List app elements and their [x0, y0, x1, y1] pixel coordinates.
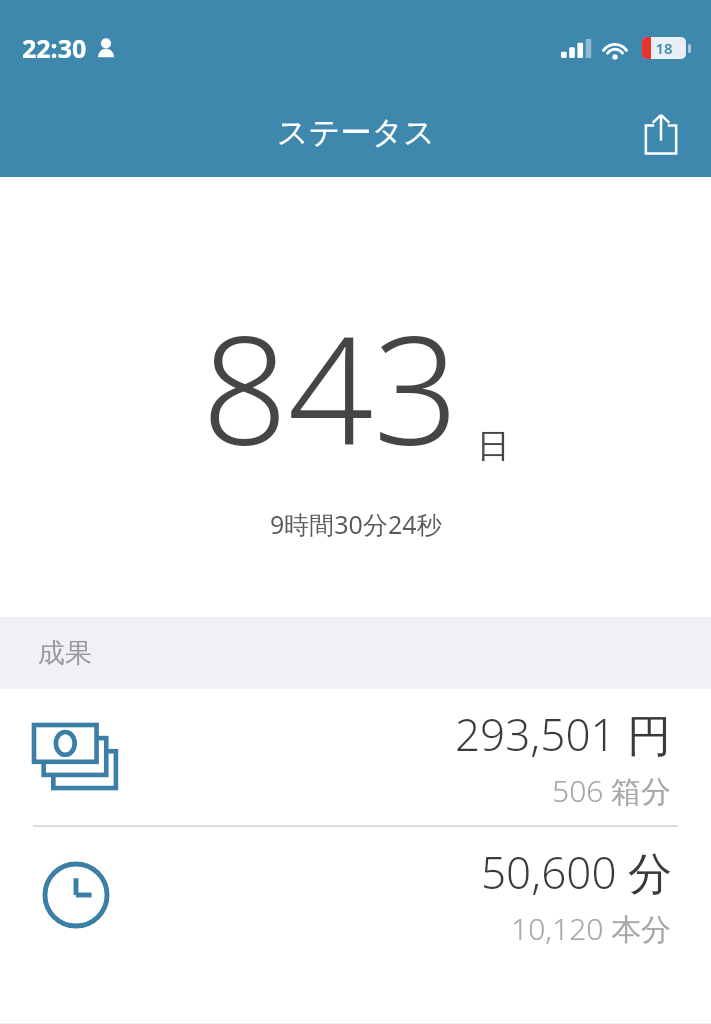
staticText: 506 箱分 — [552, 770, 672, 811]
button[interactable]: Time saved — [0, 827, 711, 963]
staticText: 18 — [642, 38, 686, 58]
other: Money saved — [33, 714, 119, 800]
button[interactable]: Money saved — [0, 689, 711, 825]
staticText: 50,600 分 — [481, 842, 672, 902]
staticText: 22:30 — [22, 31, 87, 65]
staticText: 日 — [477, 425, 510, 467]
staticText: 293,501 円 — [455, 704, 672, 764]
staticText: 成果 — [38, 636, 92, 670]
staticText: 10,120 本分 — [511, 908, 672, 949]
staticText: 9時間30分24秒 — [270, 507, 442, 541]
staticText: ステータス — [277, 113, 435, 152]
other: Time saved — [33, 852, 119, 938]
button[interactable]: Share — [635, 108, 687, 160]
staticText: 843 — [202, 285, 459, 489]
